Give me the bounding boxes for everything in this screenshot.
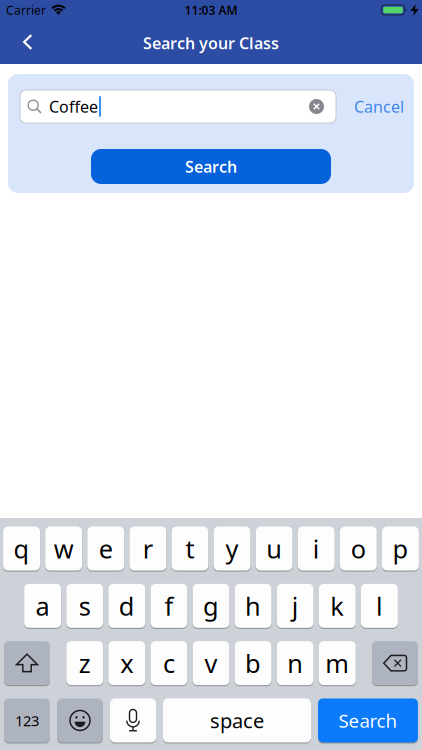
staticText: n — [287, 646, 303, 680]
button[interactable]: j — [277, 584, 314, 628]
button[interactable]: c — [150, 641, 187, 685]
staticText: p — [392, 532, 408, 565]
button[interactable]: Search — [318, 698, 418, 742]
button[interactable]: s — [66, 584, 103, 628]
staticText: k — [330, 589, 344, 623]
staticText: i — [313, 532, 320, 565]
staticText: q — [14, 532, 30, 565]
button[interactable]: t — [171, 526, 208, 570]
button[interactable]: d — [108, 584, 145, 628]
button[interactable]: k — [319, 584, 356, 628]
button[interactable]: Dictate — [110, 698, 156, 742]
button[interactable]: q — [3, 526, 40, 570]
button[interactable]: Delete — [372, 641, 418, 685]
button[interactable]: f — [150, 584, 187, 628]
button[interactable]: w — [45, 526, 82, 570]
button[interactable]: z — [66, 641, 103, 685]
button[interactable]: b — [235, 641, 272, 685]
button[interactable]: y — [214, 526, 250, 570]
staticText: 11:03 AM — [184, 2, 237, 18]
staticText: z — [79, 646, 91, 680]
staticText: space — [210, 707, 264, 734]
button[interactable]: v — [193, 641, 229, 685]
button[interactable]: p — [382, 526, 419, 570]
staticText: y — [226, 532, 239, 565]
button[interactable]: Emoji — [57, 698, 103, 742]
button[interactable]: Search — [91, 149, 331, 184]
button[interactable]: n — [277, 641, 314, 685]
staticText: d — [119, 589, 135, 623]
button[interactable]: Clear text — [309, 99, 336, 114]
staticText: 123 — [15, 711, 39, 730]
staticText: m — [325, 646, 349, 680]
button[interactable]: space — [163, 698, 311, 742]
staticText: a — [36, 589, 50, 623]
staticText: Search your Class — [143, 32, 279, 54]
button[interactable]: g — [193, 584, 229, 628]
staticText: h — [245, 589, 261, 623]
button[interactable]: x — [108, 641, 145, 685]
staticText: l — [376, 589, 383, 623]
staticText: Carrier — [6, 2, 46, 18]
staticText: Cancel — [354, 96, 404, 117]
staticText: Search — [185, 156, 237, 177]
staticText: w — [54, 532, 74, 565]
staticText: g — [203, 589, 219, 623]
button[interactable]: r — [129, 526, 166, 570]
staticText: r — [143, 532, 153, 565]
button[interactable]: h — [235, 584, 272, 628]
button[interactable]: m — [319, 641, 356, 685]
button[interactable]: l — [361, 584, 398, 628]
button[interactable]: Numbers — [4, 698, 50, 742]
staticText: c — [163, 646, 175, 680]
staticText: j — [292, 589, 299, 623]
staticText: t — [185, 532, 194, 565]
staticText: o — [351, 532, 366, 565]
button[interactable]: Back — [0, 22, 32, 62]
staticText: f — [164, 589, 173, 623]
button[interactable]: Shift — [4, 641, 50, 685]
staticText: x — [120, 646, 133, 680]
staticText: Search — [338, 708, 397, 733]
button[interactable]: Cancel — [354, 96, 404, 117]
staticText: b — [245, 646, 261, 680]
staticText: u — [266, 532, 282, 565]
button[interactable]: u — [256, 526, 293, 570]
staticText: Coffee — [49, 96, 98, 117]
staticText: v — [204, 646, 217, 680]
staticText: s — [79, 589, 91, 623]
staticText: e — [99, 532, 113, 565]
button[interactable]: a — [24, 584, 61, 628]
button[interactable]: o — [340, 526, 377, 570]
button[interactable]: e — [87, 526, 124, 570]
button[interactable]: i — [298, 526, 335, 570]
